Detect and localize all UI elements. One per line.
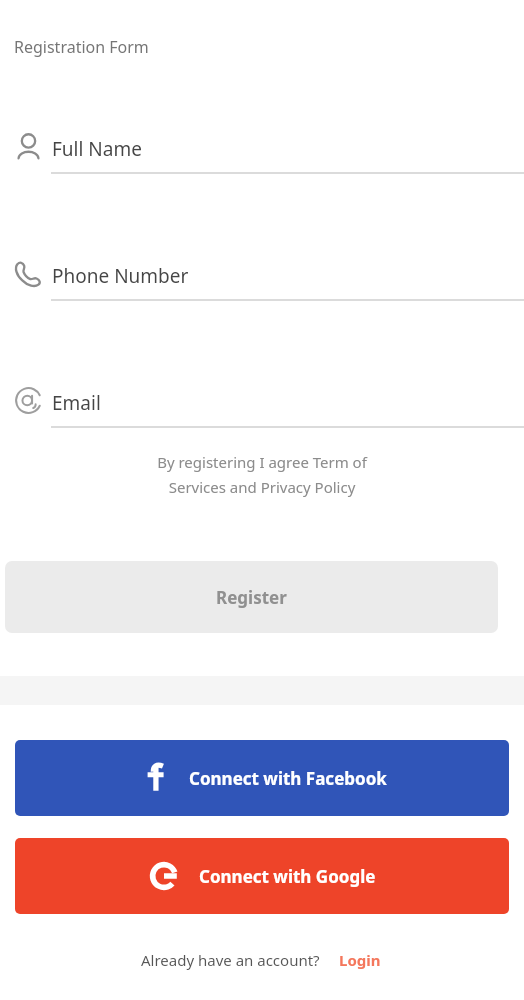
button[interactable]: Google	[15, 838, 509, 914]
staticText: Connect with Google	[199, 865, 376, 888]
button[interactable]: Full Name	[0, 124, 524, 175]
other: Facebook	[138, 762, 170, 794]
staticText: Login	[339, 950, 381, 970]
button[interactable]: Facebook	[15, 740, 509, 816]
button[interactable]: Email	[0, 378, 524, 429]
staticText: Connect with Facebook	[189, 767, 387, 790]
staticText: Full Name	[52, 136, 142, 162]
button[interactable]: Phone Number	[0, 251, 524, 302]
staticText: Phone Number	[52, 263, 189, 289]
button[interactable]: Login	[337, 948, 383, 972]
staticText: Register	[216, 586, 287, 609]
staticText: Already have an account?	[141, 950, 320, 970]
staticText: By registering I agree Term of Services …	[0, 452, 524, 497]
staticText: Registration Form	[14, 36, 149, 58]
button[interactable]: Register	[5, 561, 498, 633]
staticText: Email	[52, 390, 101, 416]
other: Google	[148, 860, 180, 892]
